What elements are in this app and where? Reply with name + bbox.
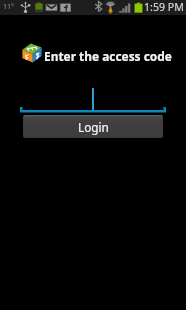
button[interactable]: Login bbox=[23, 115, 163, 138]
other: App logo bbox=[22, 43, 42, 63]
staticText: 1:59 PM bbox=[144, 0, 184, 14]
staticText: Login bbox=[78, 119, 109, 135]
staticText: 11° bbox=[3, 2, 15, 12]
button[interactable]: Access code input field bbox=[20, 86, 166, 114]
staticText: Enter the access code bbox=[44, 48, 172, 64]
